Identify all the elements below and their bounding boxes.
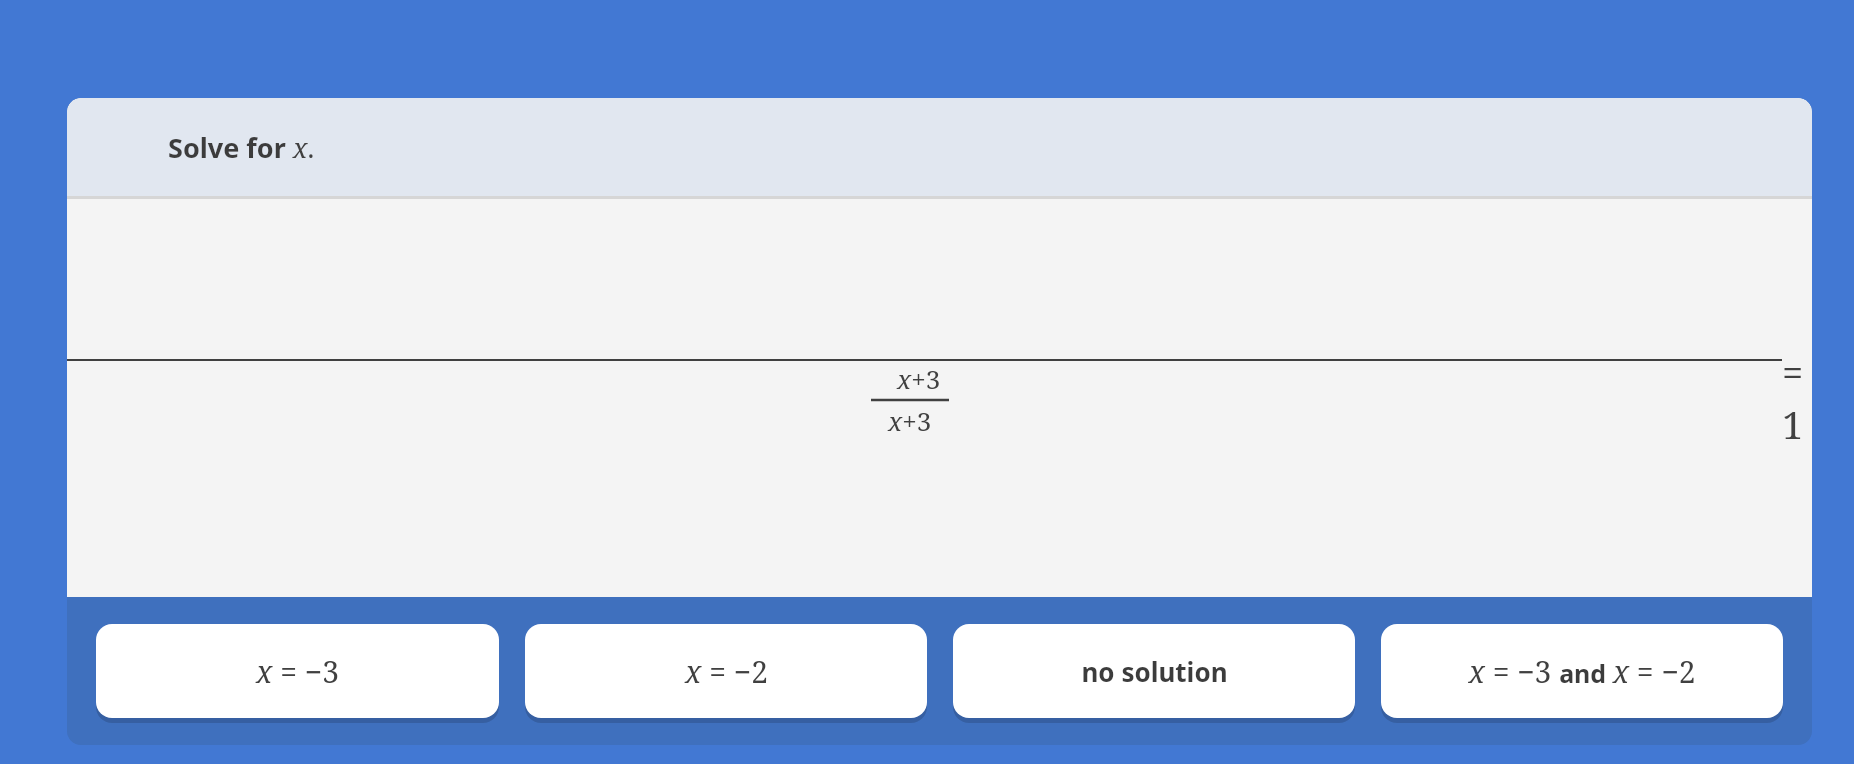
staticText: x+3 (888, 403, 932, 438)
button[interactable]: x = −2 (525, 624, 927, 718)
staticText: x = −3 and x = −2 (1468, 651, 1696, 692)
button[interactable]: no solution (953, 624, 1355, 718)
staticText: no solution (1081, 654, 1228, 689)
staticText: Solve for x. (168, 129, 315, 166)
staticText: x+3 (897, 361, 941, 396)
button[interactable]: x = −3 and x = −2 (1381, 624, 1783, 718)
button[interactable]: x = −3 (96, 624, 499, 718)
staticText: x = −2 (685, 651, 768, 692)
staticText: x = −3 (256, 651, 339, 692)
